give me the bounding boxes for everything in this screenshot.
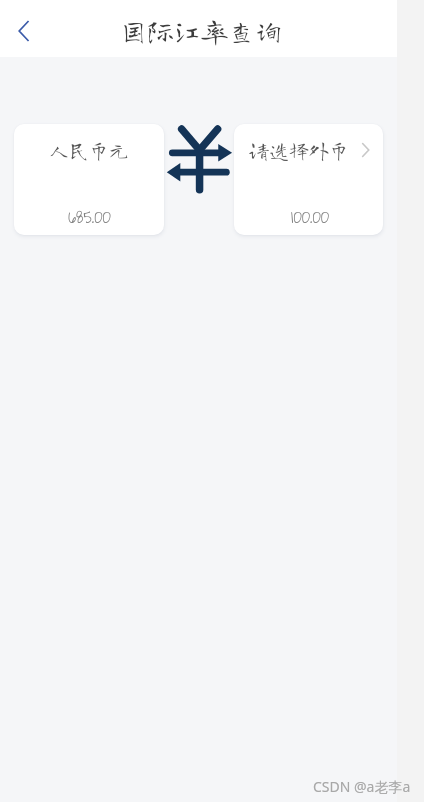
- button[interactable]: 请选择外币: [234, 124, 383, 235]
- staticText: 100.00: [291, 199, 330, 234]
- staticText: CSDN @a老李a: [313, 777, 411, 796]
- staticText: 685.00: [68, 199, 111, 234]
- staticText: 请选择外币: [249, 140, 349, 160]
- staticText: 国际汇率查询: [120, 17, 282, 44]
- button[interactable]: 人民币元: [14, 124, 164, 235]
- button[interactable]: Swap currencies: [164, 117, 234, 201]
- staticText: 人民币元: [49, 140, 129, 160]
- button[interactable]: Back: [0, 0, 47, 57]
